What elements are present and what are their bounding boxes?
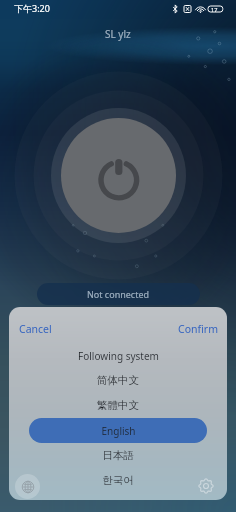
staticText: Not connected (87, 288, 150, 300)
button[interactable]: 日本語 (29, 443, 207, 468)
button[interactable]: Not connected (37, 283, 200, 305)
staticText: Confirm (178, 322, 218, 336)
staticText: English (101, 424, 136, 438)
staticText: Following system (78, 349, 159, 363)
button[interactable]: Language (15, 474, 40, 499)
staticText: 简体中文 (97, 374, 139, 387)
button[interactable]: Settings (193, 473, 218, 498)
button[interactable]: 简体中文 (29, 368, 207, 393)
staticText: 下午3:20 (14, 2, 50, 14)
staticText: 繁體中文 (97, 399, 139, 412)
button[interactable]: 한국어 (29, 468, 207, 493)
button[interactable]: 繁體中文 (29, 393, 207, 418)
staticText: 한국어 (102, 474, 134, 487)
button[interactable]: Cancel (19, 317, 52, 341)
staticText: 17 (211, 6, 218, 13)
staticText: 日本語 (102, 449, 134, 462)
button[interactable]: English (29, 418, 207, 443)
button[interactable]: Confirm (178, 317, 218, 341)
staticText: Cancel (19, 322, 52, 336)
button[interactable]: Following system (29, 343, 207, 368)
staticText: SL ylz (105, 27, 131, 41)
